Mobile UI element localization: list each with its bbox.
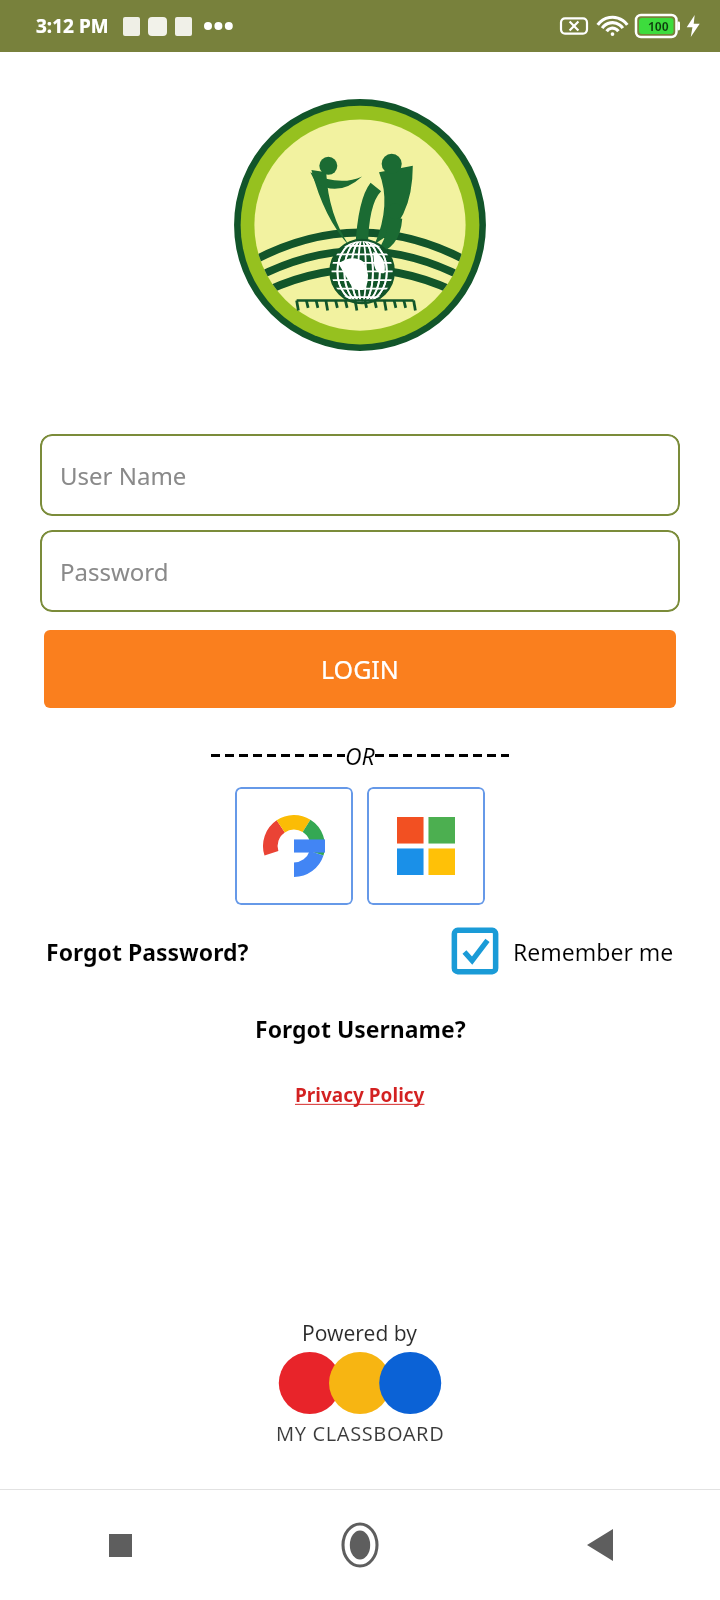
staticText: OR — [345, 740, 375, 771]
button[interactable]: Sign in with Google — [235, 787, 353, 905]
button[interactable]: User Name — [40, 434, 680, 516]
button[interactable]: Home — [240, 1490, 480, 1600]
button[interactable]: Back — [480, 1490, 720, 1600]
staticText: Powered by — [302, 1319, 418, 1348]
button[interactable]: Forgot Password? — [46, 930, 249, 973]
staticText: MY CLASSBOARD — [276, 1420, 445, 1447]
button[interactable]: Remember me — [451, 923, 674, 979]
staticText: User Name — [60, 459, 187, 492]
button[interactable]: Password — [40, 530, 680, 612]
staticText: LOGIN — [321, 652, 399, 686]
staticText: Password — [60, 555, 169, 588]
button[interactable]: Sign in with Microsoft — [367, 787, 485, 905]
staticText: 100 — [648, 18, 669, 34]
button[interactable]: Recents — [0, 1490, 240, 1600]
button[interactable]: Privacy Policy — [285, 1078, 435, 1112]
button[interactable]: LOGIN — [44, 630, 676, 708]
staticText: Remember me — [513, 936, 674, 967]
button[interactable]: Forgot Username? — [245, 1009, 476, 1048]
staticText: 3:12 PM — [36, 13, 109, 39]
